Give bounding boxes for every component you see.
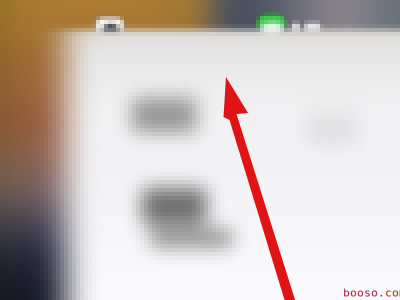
staticText: booso.com — [343, 286, 400, 299]
